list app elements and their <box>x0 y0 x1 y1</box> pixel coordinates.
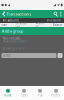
staticText: Showing 0 of 0 <box>2 47 24 50</box>
button[interactable]: Cards <box>16 86 32 100</box>
button[interactable]: Add a group <box>0 27 64 35</box>
button[interactable]: Home <box>0 86 16 100</box>
button[interactable]: More options <box>59 10 63 18</box>
staticText: Transactions <box>6 11 31 17</box>
button[interactable]: All accounts <box>1 18 19 23</box>
staticText: Amount <box>36 21 45 29</box>
staticText: Cards <box>20 94 27 97</box>
staticText: Try another filter <box>2 40 25 43</box>
staticText: Search <box>3 54 11 57</box>
staticText: Balance <box>53 23 63 27</box>
staticText: This month <box>46 19 61 22</box>
button[interactable]: Search <box>53 10 59 18</box>
staticText: Home <box>4 94 12 97</box>
button[interactable]: Search <box>1 53 56 58</box>
button[interactable]: This month <box>45 18 62 23</box>
staticText: Pay <box>38 94 42 97</box>
staticText: Add a group <box>2 28 23 34</box>
button[interactable]: Profile <box>48 86 64 100</box>
staticText: Description <box>15 21 27 29</box>
staticText: Date <box>1 23 7 27</box>
staticText: All accounts <box>2 19 18 22</box>
staticText: Profile <box>51 94 61 97</box>
staticText: No results <box>2 35 20 41</box>
button[interactable]: Pay <box>32 86 48 100</box>
button[interactable]: Back <box>1 10 6 18</box>
